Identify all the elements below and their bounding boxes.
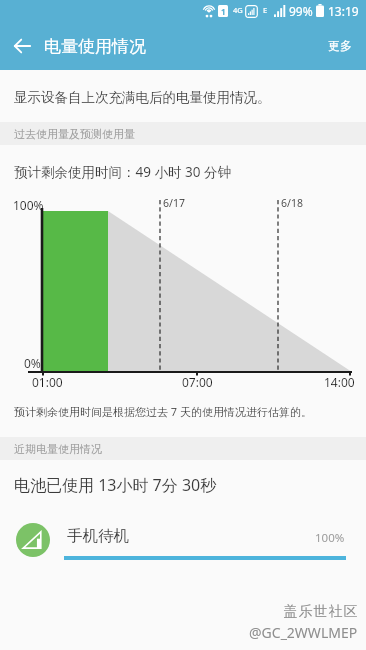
staticText: @GC_2WWLMEP <box>249 623 358 642</box>
staticText: 显示设备自上次充满电后的电量使用情况。 <box>14 89 271 106</box>
staticText: 预计剩余使用时间：49 小时 30 分钟 <box>14 163 231 181</box>
button[interactable]: Back <box>0 25 44 69</box>
staticText: 6/17 <box>163 196 185 210</box>
staticText: 4G <box>233 5 243 15</box>
staticText: 预计剩余使用时间是根据您过去 7 天的使用情况进行估算的。 <box>14 404 313 419</box>
staticText: 电量使用情况 <box>44 36 146 57</box>
staticText: 100% <box>315 530 345 546</box>
staticText: E <box>263 5 268 15</box>
staticText: 盖乐世社区 <box>283 603 358 621</box>
staticText: 07:00 <box>182 374 213 390</box>
staticText: 99% <box>289 3 313 19</box>
button[interactable]: 更多 <box>314 28 366 63</box>
staticText: 近期电量使用情况 <box>14 442 102 456</box>
staticText: 0% <box>24 355 41 371</box>
staticText: 过去使用量及预测使用量 <box>14 127 135 141</box>
button[interactable]: 手机待机 <box>0 513 366 565</box>
staticText: 电池已使用 13小时 7分 30秒 <box>14 474 217 496</box>
staticText: 100% <box>13 197 44 213</box>
staticText: 6/18 <box>281 196 303 210</box>
staticText: 1 <box>221 6 226 17</box>
staticText: 13:19 <box>328 3 359 19</box>
staticText: 01:00 <box>32 374 63 390</box>
staticText: 更多 <box>328 38 352 53</box>
staticText: 手机待机 <box>67 526 129 546</box>
staticText: 14:00 <box>324 374 355 390</box>
